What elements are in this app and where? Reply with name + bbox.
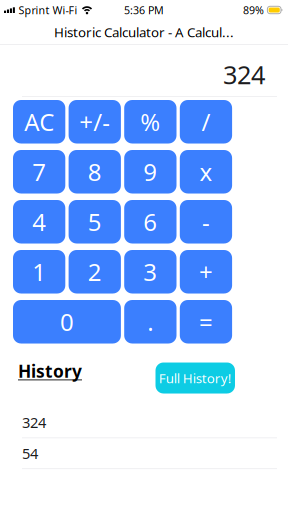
staticText: 5 (88, 206, 102, 238)
button[interactable]: 9 (124, 150, 176, 193)
staticText: 8 (88, 156, 102, 188)
button[interactable]: 0 (13, 300, 121, 343)
button[interactable]: AC (13, 100, 65, 143)
button[interactable]: +/- (69, 100, 121, 143)
button[interactable]: 8 (69, 150, 121, 193)
button[interactable]: 4 (13, 200, 65, 243)
staticText: 5:36 PM (124, 3, 164, 17)
staticText: 1 (32, 256, 46, 288)
staticText: AC (24, 106, 54, 138)
button[interactable]: 6 (124, 200, 176, 243)
staticText: 324 (223, 58, 265, 91)
button[interactable]: 54 (0, 438, 288, 469)
button[interactable]: . (124, 300, 176, 343)
staticText: . (147, 306, 153, 338)
staticText: % (140, 106, 160, 138)
staticText: = (199, 306, 213, 338)
button[interactable]: - (180, 200, 232, 243)
staticText: 4 (32, 206, 46, 238)
staticText: +/- (79, 106, 110, 138)
staticText: 7 (32, 156, 46, 188)
staticText: 54 (22, 443, 38, 463)
staticText: + (199, 256, 213, 288)
staticText: History (18, 359, 82, 382)
staticText: 2 (88, 256, 102, 288)
staticText: - (202, 206, 210, 238)
button[interactable]: Full History! (155, 362, 235, 393)
button[interactable]: % (124, 100, 176, 143)
staticText: 0 (60, 306, 74, 338)
staticText: 3 (143, 256, 157, 288)
button[interactable]: x (180, 150, 232, 193)
staticText: 89% (243, 3, 264, 17)
button[interactable]: + (180, 250, 232, 293)
staticText: x (199, 156, 212, 188)
staticText: Historic Calculator - A Calcul... (54, 23, 234, 41)
staticText: Sprint Wi-Fi (19, 3, 78, 17)
button[interactable]: 3 (124, 250, 176, 293)
staticText: Full History! (159, 369, 232, 387)
button[interactable]: 7 (13, 150, 65, 193)
button[interactable]: = (180, 300, 232, 343)
button[interactable]: 2 (69, 250, 121, 293)
button[interactable]: / (180, 100, 232, 143)
staticText: / (201, 106, 210, 138)
staticText: 324 (22, 413, 46, 432)
button[interactable]: 324 (0, 407, 288, 438)
staticText: 9 (143, 156, 157, 188)
staticText: 6 (143, 206, 157, 238)
button[interactable]: 5 (69, 200, 121, 243)
button[interactable]: 1 (13, 250, 65, 293)
